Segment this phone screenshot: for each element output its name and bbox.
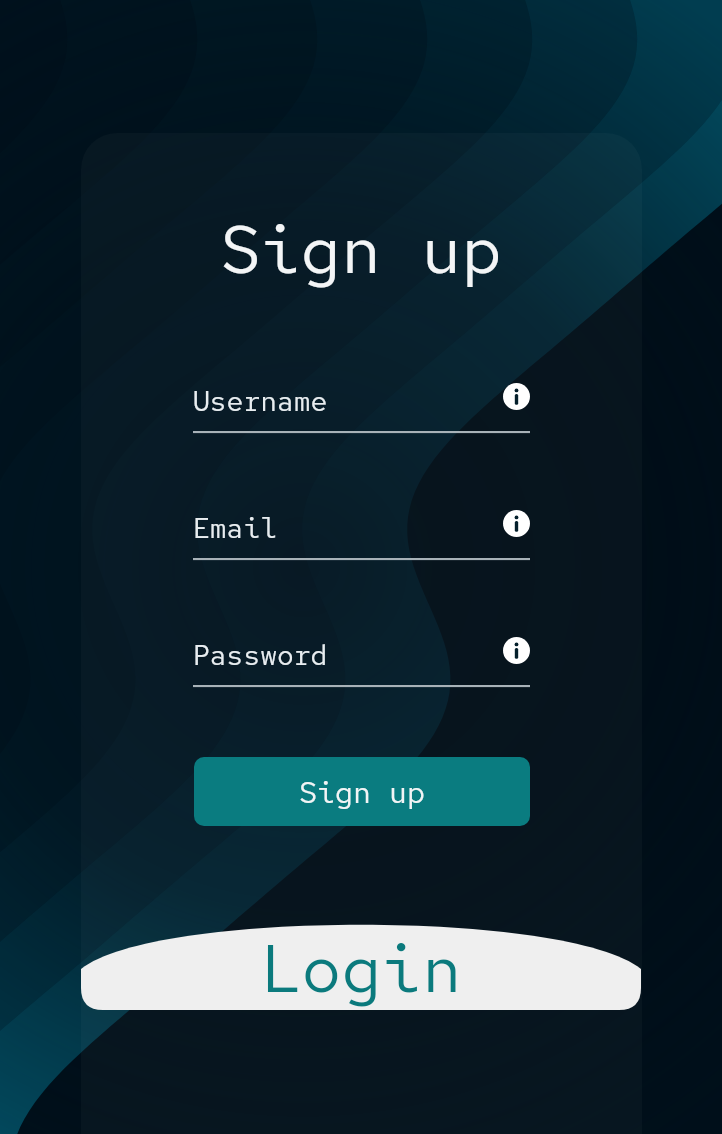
staticText: Email bbox=[193, 509, 278, 546]
button[interactable]: Email bbox=[193, 494, 530, 564]
button[interactable]: Password bbox=[193, 621, 530, 691]
staticText: Login bbox=[261, 924, 462, 1013]
button[interactable]: Info about Email bbox=[503, 510, 530, 537]
staticText: Sign up bbox=[0, 205, 722, 294]
button[interactable]: Info about Password bbox=[503, 637, 530, 664]
staticText: Username bbox=[193, 382, 328, 419]
staticText: Password bbox=[193, 636, 328, 673]
staticText: Sign up bbox=[299, 772, 425, 812]
button[interactable]: Info about Username bbox=[503, 383, 530, 410]
button[interactable]: Username bbox=[193, 367, 530, 437]
button[interactable]: Login bbox=[81, 900, 641, 1010]
button[interactable]: Sign up bbox=[194, 757, 530, 826]
